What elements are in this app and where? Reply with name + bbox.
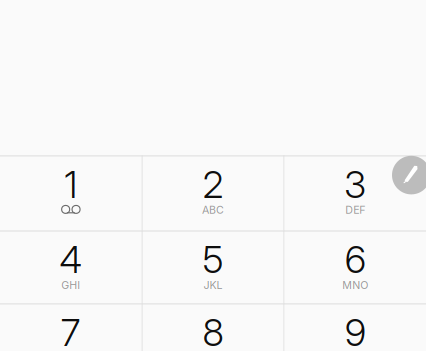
staticText: 2 [203, 162, 224, 206]
button[interactable]: 6 [284, 230, 426, 303]
button[interactable]: 1 [0, 155, 142, 230]
staticText: 8 [203, 310, 224, 351]
button[interactable]: 2 [143, 155, 283, 230]
staticText: ABC [202, 204, 224, 216]
staticText: 9 [345, 310, 366, 351]
button[interactable]: 8 [143, 303, 283, 351]
staticText: GHI [61, 279, 80, 291]
button[interactable]: 4 [0, 230, 142, 303]
staticText: JKL [204, 279, 223, 291]
staticText: 7 [61, 310, 81, 351]
staticText: MNO [342, 279, 368, 291]
staticText: 3 [344, 162, 366, 206]
button[interactable]: 3 [284, 155, 426, 230]
staticText: 1 [64, 162, 77, 206]
staticText: DEF [345, 204, 365, 216]
staticText: 5 [203, 237, 224, 281]
staticText: 4 [59, 237, 82, 281]
button[interactable]: 7 [0, 303, 142, 351]
button[interactable]: 5 [143, 230, 283, 303]
button[interactable]: 9 [284, 303, 426, 351]
button[interactable]: Edit [392, 156, 426, 194]
staticText: 6 [345, 237, 366, 281]
